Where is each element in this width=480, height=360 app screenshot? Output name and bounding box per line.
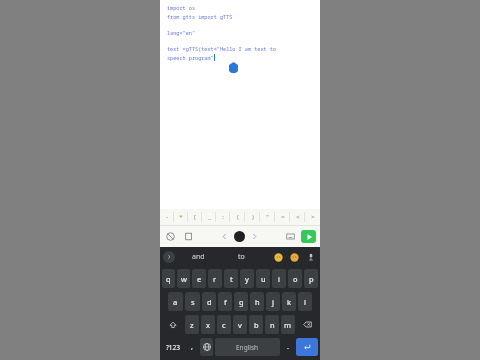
button[interactable]: <	[290, 209, 305, 225]
button[interactable]: Copy	[182, 230, 195, 243]
staticText: m	[284, 320, 292, 330]
button[interactable]: t	[224, 269, 238, 288]
button[interactable]: f	[218, 292, 232, 311]
button[interactable]: q	[162, 269, 175, 288]
button[interactable]: b	[249, 315, 263, 334]
button[interactable]: e	[192, 269, 206, 288]
staticText: (	[237, 213, 239, 221]
staticText: a	[173, 297, 178, 307]
button[interactable]: to	[221, 247, 262, 267]
button[interactable]: v	[233, 315, 247, 334]
staticText: ,	[191, 342, 193, 352]
button[interactable]: d	[202, 292, 216, 311]
button[interactable]: Next	[248, 230, 261, 243]
button[interactable]: .	[282, 338, 294, 356]
button[interactable]: w	[177, 269, 190, 288]
staticText: and	[192, 252, 205, 262]
staticText: -	[166, 213, 168, 221]
button[interactable]: s	[185, 292, 200, 311]
button[interactable]: c	[217, 315, 231, 334]
button[interactable]: Shift	[162, 315, 183, 334]
staticText: :	[222, 213, 224, 221]
staticText: l	[304, 297, 306, 307]
staticText: to	[238, 252, 245, 262]
staticText: <	[296, 213, 300, 221]
button[interactable]: "	[260, 209, 275, 225]
staticText: g	[239, 297, 244, 307]
button[interactable]: n	[265, 315, 279, 334]
staticText: "	[266, 213, 269, 221]
button[interactable]: a	[168, 292, 183, 311]
button[interactable]: >	[305, 209, 320, 225]
button[interactable]: -	[160, 209, 174, 225]
staticText: y	[245, 274, 249, 284]
staticText: z	[190, 320, 194, 330]
button[interactable]: Run	[301, 230, 316, 243]
button[interactable]: ?123	[162, 338, 184, 356]
button[interactable]: o	[288, 269, 302, 288]
button[interactable]: ,	[186, 338, 198, 356]
button[interactable]: g	[234, 292, 248, 311]
staticText: n	[270, 320, 275, 330]
staticText: w	[181, 274, 187, 284]
button[interactable]: and	[175, 247, 221, 267]
button[interactable]: *	[174, 209, 188, 225]
button[interactable]: Change language	[200, 338, 213, 356]
staticText: r	[213, 274, 217, 284]
button[interactable]: i	[272, 269, 286, 288]
button[interactable]: Keyboard	[284, 230, 297, 243]
staticText: b	[254, 320, 259, 330]
button[interactable]: _	[202, 209, 216, 225]
staticText: f	[224, 297, 227, 307]
button[interactable]: p	[304, 269, 318, 288]
staticText: o	[293, 274, 298, 284]
button[interactable]: :	[216, 209, 230, 225]
button[interactable]: r	[208, 269, 222, 288]
button[interactable]: m	[281, 315, 295, 334]
button[interactable]: Undo	[164, 230, 177, 243]
button[interactable]: English	[215, 338, 280, 356]
staticText: c	[222, 320, 226, 330]
button[interactable]: Enter	[296, 338, 318, 356]
staticText: text =gTTS(text="Hello I am text to	[167, 45, 276, 52]
staticText: x	[206, 320, 210, 330]
staticText: t	[230, 274, 233, 284]
staticText: .	[287, 342, 289, 352]
button[interactable]: Emoji suggestion	[273, 252, 284, 263]
staticText: =	[281, 213, 285, 221]
staticText: lang="en"	[167, 29, 196, 36]
staticText: p	[309, 274, 314, 284]
staticText: i	[278, 274, 280, 284]
staticText: [	[194, 213, 196, 221]
staticText: j	[272, 297, 274, 307]
button[interactable]: y	[240, 269, 254, 288]
button[interactable]: h	[250, 292, 264, 311]
button[interactable]: Voice input	[305, 251, 317, 263]
button[interactable]: x	[201, 315, 215, 334]
staticText: import os	[167, 4, 196, 11]
button[interactable]: [	[188, 209, 202, 225]
staticText: >	[311, 213, 315, 221]
button[interactable]: )	[245, 209, 260, 225]
staticText: u	[261, 274, 266, 284]
button[interactable]: k	[282, 292, 296, 311]
button[interactable]: Previous	[218, 230, 231, 243]
button[interactable]: =	[275, 209, 290, 225]
button[interactable]: l	[298, 292, 312, 311]
button[interactable]: (	[230, 209, 245, 225]
button[interactable]: z	[185, 315, 199, 334]
button[interactable]: Expand suggestions	[163, 251, 175, 263]
button[interactable]: u	[256, 269, 270, 288]
button[interactable]: Backspace	[297, 315, 318, 334]
staticText: q	[166, 274, 171, 284]
staticText: speech program"	[167, 54, 214, 61]
staticText: e	[197, 274, 202, 284]
button[interactable]: j	[266, 292, 280, 311]
staticText: *	[179, 213, 183, 221]
staticText: _	[208, 213, 211, 221]
staticText: ?123	[166, 343, 180, 352]
staticText: )	[252, 213, 254, 221]
button[interactable]: Record	[234, 231, 245, 242]
button[interactable]: Cat emoji suggestion	[289, 252, 300, 263]
staticText: s	[191, 297, 195, 307]
